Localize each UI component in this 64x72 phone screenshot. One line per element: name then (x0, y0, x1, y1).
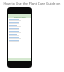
staticText: Plant Care (14, 15, 26, 18)
button[interactable] (9, 31, 30, 34)
staticText: How to Use the Plant Care Guide on Your … (1, 1, 63, 6)
button[interactable] (9, 37, 30, 40)
button[interactable]: Plant Care (8, 14, 31, 18)
button[interactable] (9, 25, 30, 28)
button[interactable] (9, 34, 30, 37)
button[interactable] (9, 22, 30, 25)
button[interactable] (9, 28, 30, 31)
button[interactable] (9, 40, 30, 43)
button[interactable] (9, 19, 30, 22)
